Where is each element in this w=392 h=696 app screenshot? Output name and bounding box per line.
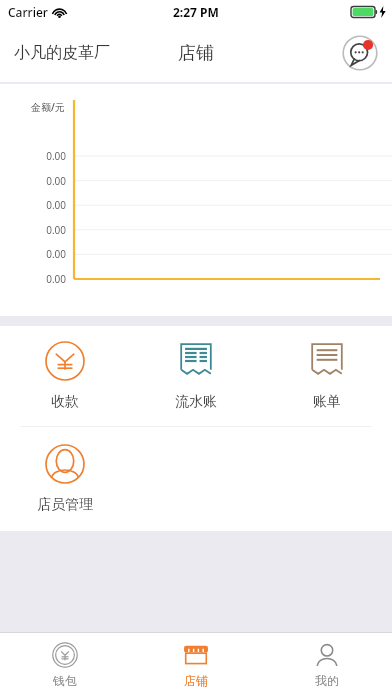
staticText: 0.00 xyxy=(34,174,66,188)
button[interactable]: 流水账 xyxy=(130,326,261,426)
button[interactable]: 收款 xyxy=(0,326,130,426)
staticText: 0.00 xyxy=(34,247,66,261)
staticText: 店员管理 xyxy=(37,496,93,514)
staticText: 店铺 xyxy=(178,42,214,65)
staticText: 账单 xyxy=(313,393,341,411)
staticText: 0.00 xyxy=(34,272,66,286)
staticText: 0.00 xyxy=(34,149,66,163)
staticText: 金额/元 xyxy=(31,100,65,114)
button[interactable]: 店铺 xyxy=(130,633,261,696)
staticText: 钱包 xyxy=(53,673,77,688)
staticText: 收款 xyxy=(51,393,79,411)
staticText: 0.00 xyxy=(34,198,66,212)
staticText: 店铺 xyxy=(184,673,208,688)
button[interactable]: 我的 xyxy=(261,633,392,696)
staticText: 流水账 xyxy=(175,393,217,411)
button[interactable]: Messages xyxy=(342,35,378,71)
button[interactable]: 店员管理 xyxy=(0,427,130,531)
button[interactable]: 账单 xyxy=(261,326,392,426)
button[interactable]: 钱包 xyxy=(0,633,130,696)
staticText: 0.00 xyxy=(34,223,66,237)
staticText: 我的 xyxy=(315,673,339,688)
button[interactable]: 小凡的皮革厂 xyxy=(14,43,110,63)
staticText: Carrier xyxy=(8,4,48,20)
staticText: 2:27 PM xyxy=(173,4,219,20)
